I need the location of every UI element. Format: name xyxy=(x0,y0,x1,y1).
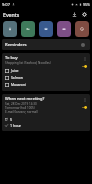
staticText: E-mail (larvaev, normal) xyxy=(5,110,38,114)
button[interactable]: Settings xyxy=(80,10,89,19)
button[interactable]: Toggle reminder xyxy=(81,105,88,110)
button[interactable]: Toggle reminder xyxy=(81,64,88,69)
button[interactable]: Macaroni xyxy=(5,81,76,88)
button[interactable]: Shortcut xyxy=(39,21,53,37)
button[interactable]: When next meeting? xyxy=(2,94,90,131)
staticText: Salmon xyxy=(11,75,23,80)
staticText: Sat, 28 Dec 2019 14:30 xyxy=(5,102,37,106)
button[interactable]: Shortcut xyxy=(3,21,17,37)
staticText: 1 hour xyxy=(10,123,22,128)
staticText: Tomorrow (hall 1005) xyxy=(5,106,35,110)
button[interactable]: More options xyxy=(81,55,88,62)
staticText: Shopping list (Seafood, Noodles) xyxy=(5,61,51,65)
button[interactable]: More options xyxy=(81,96,88,103)
button[interactable]: 5 xyxy=(5,116,76,122)
staticText: Reminders xyxy=(5,42,27,48)
button[interactable]: 1 hour xyxy=(5,122,76,128)
staticText: To buy xyxy=(5,55,18,60)
button[interactable]: Reminders xyxy=(2,39,90,50)
staticText: Macaroni xyxy=(11,82,26,87)
button[interactable]: Download xyxy=(70,10,79,19)
button[interactable]: Shortcut xyxy=(21,21,35,37)
staticText: 95% xyxy=(83,2,90,7)
button[interactable]: Shortcut xyxy=(57,21,71,37)
staticText: 9:07 xyxy=(2,2,10,7)
staticText: When next meeting? xyxy=(5,96,45,101)
staticText: Juice xyxy=(11,68,19,73)
button[interactable]: Salmon xyxy=(5,74,76,81)
button[interactable]: Shortcut xyxy=(75,21,89,37)
staticText: Events xyxy=(3,11,20,18)
staticText: 5 xyxy=(10,117,13,122)
button[interactable]: Reminder settings xyxy=(78,40,87,49)
button[interactable]: Juice xyxy=(5,67,76,74)
button[interactable]: To buy xyxy=(2,53,90,91)
